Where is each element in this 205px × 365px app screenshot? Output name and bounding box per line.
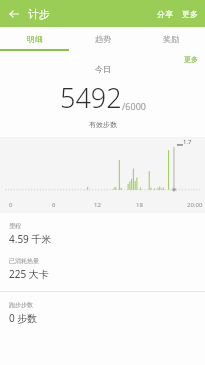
button[interactable]: 跑步步数 <box>0 292 205 325</box>
staticText: 趋势 <box>95 34 111 44</box>
staticText: 今日 <box>95 64 111 74</box>
staticText: 已消耗热量 <box>9 257 39 265</box>
staticText: 4.59 千米 <box>9 232 52 246</box>
button[interactable]: 趋势 <box>69 27 137 51</box>
staticText: 0 <box>9 201 13 209</box>
staticText: 1.7 <box>183 138 192 146</box>
staticText: 0 步数 <box>9 311 38 325</box>
staticText: 明细 <box>27 34 43 44</box>
button[interactable]: 更多 <box>184 51 205 64</box>
staticText: 计步 <box>28 7 50 21</box>
staticText: 更多 <box>184 55 198 64</box>
staticText: 5492 <box>60 79 122 116</box>
staticText: 跑步步数 <box>9 301 33 309</box>
staticText: 20:00 <box>187 201 203 209</box>
button[interactable]: 更多 <box>178 2 205 26</box>
button[interactable]: 明细 <box>0 27 69 51</box>
staticText: 分享 <box>157 9 173 19</box>
staticText: 6 <box>52 201 56 209</box>
staticText: 奖励 <box>163 34 179 44</box>
staticText: /6000 <box>122 100 146 112</box>
button[interactable]: 已消耗热量 <box>0 246 205 281</box>
button[interactable]: 里程 <box>0 213 205 246</box>
staticText: 12 <box>94 201 101 209</box>
button[interactable]: 分享 <box>152 2 178 26</box>
staticText: 有效步数 <box>89 120 117 129</box>
button[interactable]: 奖励 <box>137 27 205 51</box>
staticText: 225 大卡 <box>9 267 49 281</box>
staticText: 18 <box>136 201 143 209</box>
staticText: 里程 <box>9 222 21 230</box>
staticText: 更多 <box>182 9 198 19</box>
button[interactable]: Back <box>0 0 28 27</box>
